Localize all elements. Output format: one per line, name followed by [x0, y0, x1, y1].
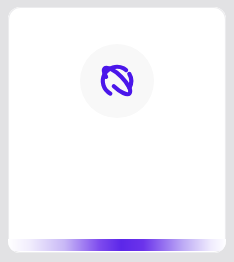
button[interactable]: App logo — [80, 44, 154, 118]
